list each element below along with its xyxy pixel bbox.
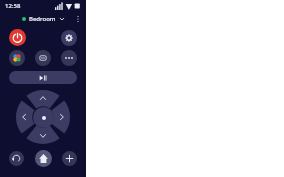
button[interactable]: Closed captions <box>35 50 51 66</box>
button[interactable]: Apps <box>9 50 25 66</box>
button[interactable]: Select <box>33 107 54 128</box>
staticText: 12:58 <box>5 2 21 10</box>
button[interactable]: Bedroom <box>18 13 69 25</box>
button[interactable]: Add <box>62 151 77 166</box>
button[interactable]: Back <box>9 151 24 166</box>
button[interactable]: Settings <box>61 30 77 46</box>
button[interactable]: More options <box>72 13 84 25</box>
button[interactable]: More <box>61 50 77 66</box>
button[interactable]: Home <box>35 150 52 167</box>
button[interactable]: Power <box>9 29 26 46</box>
button[interactable]: Play or pause <box>9 71 77 84</box>
staticText: Bedroom <box>29 15 56 23</box>
